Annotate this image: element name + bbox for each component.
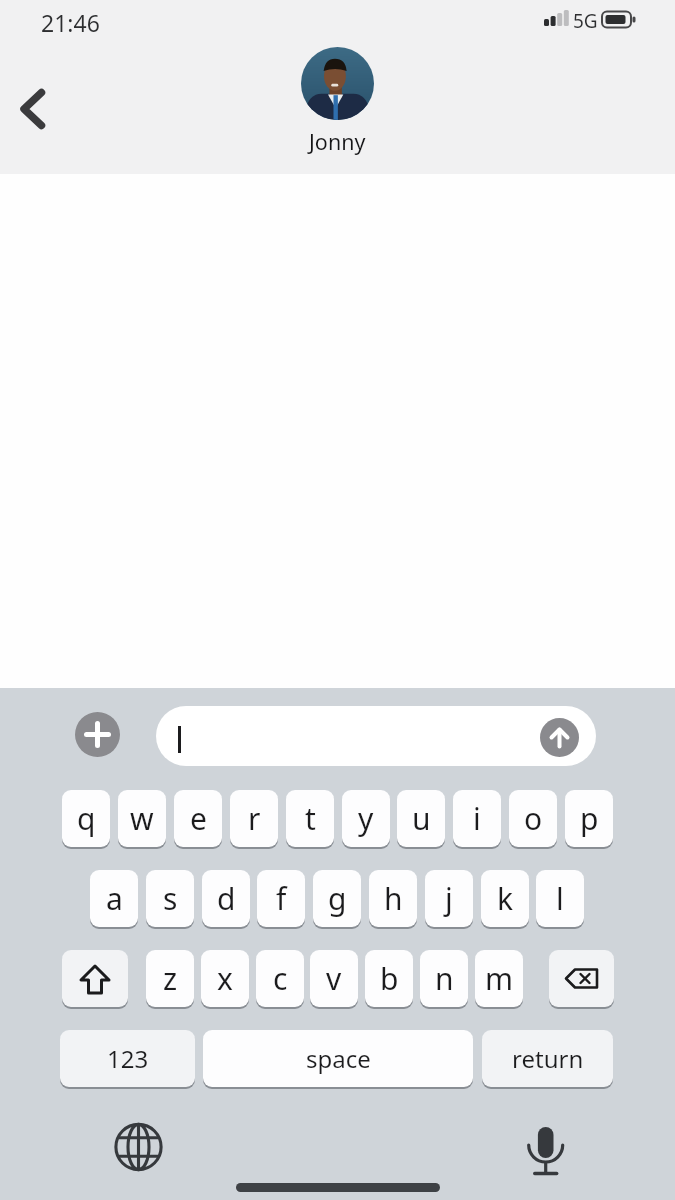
staticText: 21:46 bbox=[41, 7, 100, 38]
button[interactable]: u bbox=[397, 790, 445, 847]
button[interactable]: g bbox=[313, 870, 361, 927]
button[interactable]: w bbox=[118, 790, 166, 847]
button[interactable]: p bbox=[565, 790, 613, 847]
button[interactable]: z bbox=[146, 950, 194, 1007]
staticText: z bbox=[163, 958, 178, 999]
button[interactable]: space bbox=[203, 1030, 473, 1087]
staticText: y bbox=[358, 798, 374, 839]
button[interactable]: c bbox=[256, 950, 304, 1007]
staticText: p bbox=[580, 798, 599, 839]
staticText: q bbox=[77, 798, 96, 839]
staticText: t bbox=[305, 798, 316, 839]
staticText: c bbox=[273, 958, 288, 999]
staticText: return bbox=[512, 1042, 584, 1075]
staticText: b bbox=[380, 958, 399, 999]
staticText: 5G bbox=[573, 8, 598, 34]
staticText: d bbox=[217, 878, 236, 919]
button[interactable] bbox=[549, 950, 614, 1007]
button[interactable] bbox=[156, 706, 596, 766]
button[interactable]: d bbox=[202, 870, 250, 927]
button[interactable]: b bbox=[365, 950, 413, 1007]
button[interactable]: y bbox=[342, 790, 390, 847]
button[interactable]: e bbox=[174, 790, 222, 847]
staticText: k bbox=[497, 878, 514, 919]
staticText: u bbox=[412, 798, 431, 839]
staticText: j bbox=[445, 878, 453, 919]
staticText: g bbox=[328, 878, 347, 919]
staticText: Jonny bbox=[309, 127, 366, 156]
button[interactable] bbox=[108, 1117, 169, 1178]
staticText: f bbox=[276, 878, 287, 919]
button[interactable]: a bbox=[90, 870, 138, 927]
button[interactable] bbox=[62, 950, 128, 1007]
button[interactable]: s bbox=[146, 870, 194, 927]
staticText: s bbox=[163, 878, 178, 919]
button[interactable]: r bbox=[230, 790, 278, 847]
staticText: space bbox=[306, 1042, 371, 1075]
staticText: o bbox=[524, 798, 543, 839]
button[interactable]: l bbox=[536, 870, 584, 927]
staticText: r bbox=[248, 798, 261, 839]
staticText: w bbox=[130, 798, 154, 839]
button[interactable]: j bbox=[425, 870, 473, 927]
staticText: a bbox=[106, 878, 123, 919]
button[interactable] bbox=[520, 1118, 572, 1180]
button[interactable]: t bbox=[286, 790, 334, 847]
button[interactable] bbox=[540, 718, 579, 757]
button[interactable]: 123 bbox=[60, 1030, 195, 1087]
staticText: e bbox=[190, 798, 207, 839]
button[interactable]: x bbox=[201, 950, 249, 1007]
button[interactable] bbox=[75, 712, 120, 757]
staticText: h bbox=[384, 878, 403, 919]
button[interactable]: v bbox=[310, 950, 358, 1007]
button[interactable]: k bbox=[481, 870, 529, 927]
staticText: l bbox=[556, 878, 564, 919]
button[interactable]: f bbox=[257, 870, 305, 927]
button[interactable]: i bbox=[453, 790, 501, 847]
button[interactable]: m bbox=[475, 950, 523, 1007]
staticText: n bbox=[435, 958, 454, 999]
staticText: i bbox=[473, 798, 481, 839]
staticText: m bbox=[485, 958, 514, 999]
button[interactable]: return bbox=[482, 1030, 613, 1087]
staticText: x bbox=[217, 958, 233, 999]
button[interactable] bbox=[10, 83, 56, 135]
button[interactable]: o bbox=[509, 790, 557, 847]
button[interactable]: n bbox=[420, 950, 468, 1007]
button[interactable]: q bbox=[62, 790, 110, 847]
button[interactable] bbox=[301, 47, 374, 120]
staticText: v bbox=[326, 958, 342, 999]
button[interactable]: h bbox=[369, 870, 417, 927]
staticText: 123 bbox=[107, 1042, 149, 1075]
